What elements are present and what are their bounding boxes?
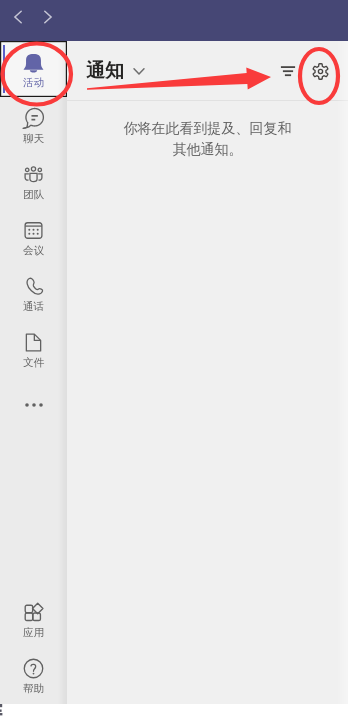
- staticText: 会议: [23, 244, 44, 257]
- button[interactable]: Forward: [37, 6, 59, 28]
- staticText: 通话: [23, 300, 44, 313]
- button[interactable]: 通知: [86, 59, 145, 83]
- staticText: 应用: [23, 626, 44, 639]
- staticText: 帮助: [23, 682, 44, 695]
- staticText: 活动: [23, 76, 44, 89]
- staticText: 你将在此看到提及、回复和 其他通知。: [81, 120, 334, 158]
- button[interactable]: 应用: [0, 591, 67, 647]
- button[interactable]: 聊天: [0, 97, 67, 153]
- button[interactable]: 会议: [0, 209, 67, 265]
- button[interactable]: More: [0, 377, 67, 433]
- button[interactable]: 通话: [0, 265, 67, 321]
- button[interactable]: 活动: [0, 41, 67, 97]
- staticText: 文件: [23, 356, 44, 369]
- button[interactable]: Settings: [305, 56, 335, 86]
- staticText: 聊天: [23, 132, 44, 145]
- staticText: 团队: [23, 188, 44, 201]
- button[interactable]: Filter: [273, 56, 303, 86]
- button[interactable]: Back: [7, 6, 29, 28]
- staticText: 通知: [86, 59, 124, 83]
- button[interactable]: 团队: [0, 153, 67, 209]
- button[interactable]: 文件: [0, 321, 67, 377]
- button[interactable]: 帮助: [0, 647, 67, 703]
